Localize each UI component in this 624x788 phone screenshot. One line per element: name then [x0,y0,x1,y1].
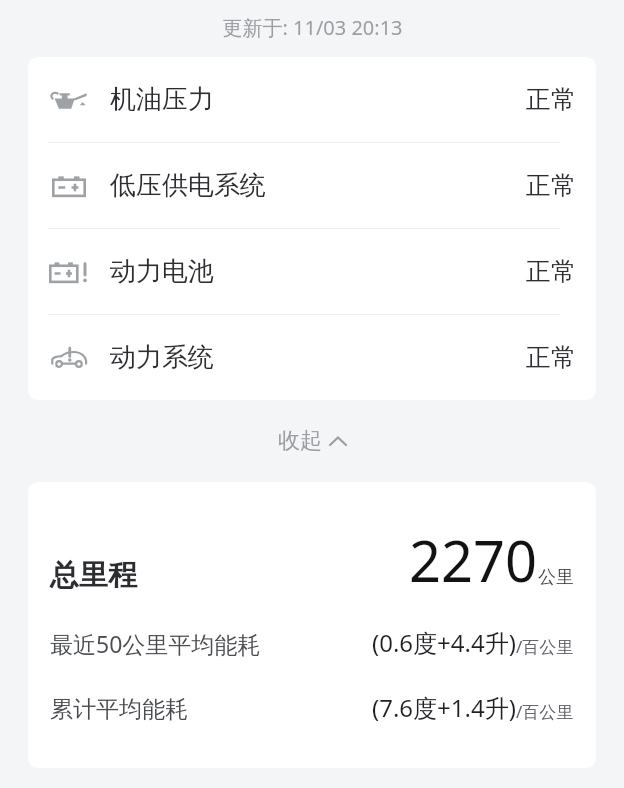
staticText: 最近50公里平均能耗 [50,628,261,659]
button[interactable]: Low voltage supply [28,143,596,228]
staticText: 公里 [538,566,574,589]
button[interactable]: 累计平均能耗 [50,691,574,724]
other: Oil pressure [51,88,87,112]
staticText: 动力系统 [110,341,214,374]
staticText: 正常 [526,84,576,115]
staticText: 更新于: 11/03 20:13 [222,14,403,41]
staticText: 低压供电系统 [110,169,266,202]
staticText: 机油压力 [110,83,214,116]
other: Power battery warning [49,259,89,285]
staticText: 2270 [409,522,538,598]
other: Powertrain warning [50,345,88,371]
staticText: /百公里 [516,700,574,723]
staticText: 总里程 [50,557,137,594]
staticText: 动力电池 [110,255,214,288]
staticText: 收起 [278,427,322,455]
button[interactable]: Powertrain warning [28,315,596,400]
staticText: 正常 [526,256,576,287]
button[interactable]: 总里程 [50,522,574,598]
button[interactable]: Oil pressure [28,57,596,142]
button[interactable]: Power battery warning [28,229,596,314]
other: Low voltage supply [52,173,86,199]
staticText: 累计平均能耗 [50,695,188,724]
staticText: (7.6度+1.4升) [372,691,516,724]
staticText: (0.6度+4.4升) [372,626,516,659]
staticText: /百公里 [516,635,574,658]
button[interactable]: 最近50公里平均能耗 [50,626,574,659]
staticText: 正常 [526,342,576,373]
staticText: 正常 [526,170,576,201]
button[interactable]: 收起 [0,400,624,482]
